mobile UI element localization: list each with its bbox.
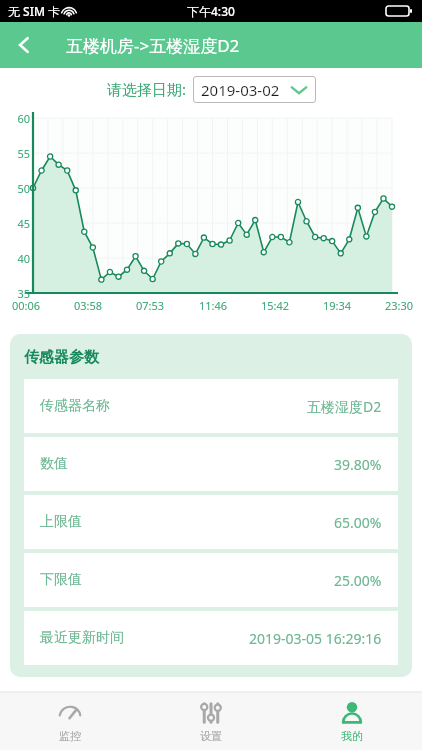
button[interactable]: 上限值 [24, 495, 398, 549]
button[interactable]: 下限值 [24, 553, 398, 607]
staticText: 传感器名称 [40, 397, 110, 415]
button[interactable]: 传感器名称 [24, 379, 398, 433]
button[interactable]: 数值 [24, 437, 398, 491]
staticText: 请选择日期: [107, 79, 187, 99]
button[interactable]: 最近更新时间 [24, 611, 398, 665]
staticText: 数值 [40, 455, 68, 473]
staticText: 00:06 [12, 298, 41, 313]
staticText: 07:53 [136, 298, 165, 313]
button[interactable]: 2019-03-02 [193, 76, 316, 103]
staticText: 03:58 [74, 298, 103, 313]
staticText: 45 [8, 216, 30, 231]
staticText: 11:46 [199, 298, 228, 313]
staticText: 65.00% [334, 513, 382, 532]
button[interactable]: 监控 [0, 692, 140, 750]
staticText: 25.00% [334, 571, 382, 590]
staticText: 上限值 [40, 513, 82, 531]
staticText: 下午4:30 [187, 3, 235, 19]
staticText: 50 [8, 181, 30, 196]
staticText: 无 SIM 卡 [8, 3, 61, 19]
staticText: 19:34 [323, 298, 352, 313]
staticText: 35 [8, 286, 30, 301]
staticText: 2019-03-02 [201, 80, 280, 100]
staticText: 传感器参数 [24, 348, 99, 367]
staticText: 设置 [200, 729, 222, 743]
staticText: 五楼机房->五楼湿度D2 [66, 34, 240, 57]
staticText: 39.80% [334, 455, 382, 474]
button[interactable]: 我的 [281, 692, 422, 750]
staticText: 下限值 [40, 571, 82, 589]
staticText: 最近更新时间 [40, 629, 124, 647]
staticText: 55 [8, 146, 30, 161]
staticText: 五楼湿度D2 [307, 397, 382, 416]
button[interactable]: Back [0, 22, 48, 68]
staticText: 2019-03-05 16:29:16 [249, 629, 382, 648]
staticText: 60 [8, 111, 30, 126]
staticText: 我的 [341, 729, 363, 743]
button[interactable]: 设置 [140, 692, 281, 750]
staticText: 40 [8, 251, 30, 266]
staticText: 监控 [59, 729, 81, 743]
staticText: 23:30 [385, 298, 414, 313]
staticText: 15:42 [261, 298, 290, 313]
